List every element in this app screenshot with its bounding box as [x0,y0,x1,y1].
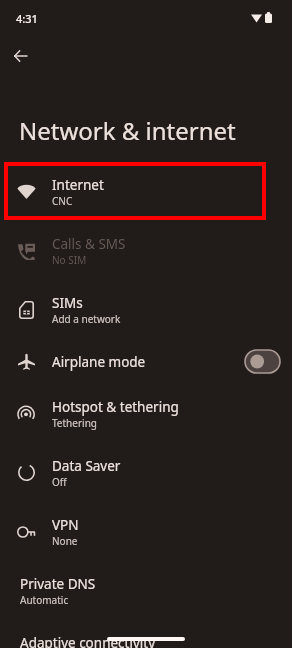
staticText: Automatic [20,593,69,607]
button[interactable]: SIMs [0,280,292,339]
staticText: Network & internet [19,114,236,147]
button[interactable]: VPN [0,502,292,561]
staticText: CNC [52,194,73,208]
button[interactable]: Back [2,38,38,74]
staticText: Calls & SMS [52,235,126,253]
staticText: SIMs [52,294,83,312]
button[interactable]: Private DNS [0,561,292,620]
button[interactable]: Adaptive connectivity [0,620,292,648]
staticText: Private DNS [20,575,96,593]
staticText: Tethering [52,416,97,430]
button[interactable]: Hotspot & tethering [0,384,292,443]
staticText: Off [52,475,67,489]
staticText: Airplane mode [52,353,245,371]
staticText: Data Saver [52,457,121,475]
staticText: None [52,534,78,548]
button[interactable]: Calls & SMS [0,221,292,280]
button[interactable]: Airplane mode [0,339,292,384]
staticText: Hotspot & tethering [52,398,179,416]
staticText: VPN [52,516,79,534]
staticText: No SIM [52,253,87,267]
staticText: Add a network [52,312,121,326]
button[interactable]: Internet [0,162,292,221]
staticText: Internet [52,176,104,194]
button[interactable]: Data Saver [0,443,292,502]
button[interactable]: Airplane mode toggle [245,350,280,373]
staticText: 4:31 [16,11,38,26]
staticText: Adaptive connectivity [20,634,156,648]
